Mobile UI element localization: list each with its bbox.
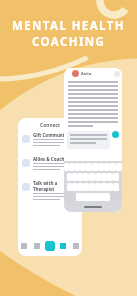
- staticText: MENTAL HEALTH: [12, 18, 125, 34]
- staticText: COACHING: [32, 34, 106, 50]
- staticText: Gift Community: [33, 132, 69, 138]
- button[interactable]: [101, 183, 107, 191]
- button[interactable]: [113, 173, 119, 181]
- button[interactable]: [83, 173, 89, 181]
- button[interactable]: Talk with a Therapist: [22, 180, 78, 204]
- button[interactable]: [80, 163, 86, 171]
- button[interactable]: [69, 236, 82, 256]
- button[interactable]: [56, 236, 69, 256]
- button[interactable]: [107, 183, 113, 191]
- staticText: Connect: [40, 122, 61, 129]
- staticText: Allies & Coaches: [33, 156, 70, 162]
- button[interactable]: Info: [114, 71, 120, 77]
- button[interactable]: [95, 183, 101, 191]
- button[interactable]: [89, 173, 95, 181]
- button[interactable]: [67, 173, 72, 181]
- button[interactable]: [83, 183, 89, 191]
- button[interactable]: [104, 163, 110, 171]
- button[interactable]: [30, 236, 43, 256]
- button[interactable]: [86, 163, 92, 171]
- button[interactable]: [116, 163, 122, 171]
- button[interactable]: [92, 163, 98, 171]
- button[interactable]: [74, 163, 80, 171]
- button[interactable]: [95, 173, 101, 181]
- button[interactable]: [98, 163, 104, 171]
- button[interactable]: [72, 183, 77, 191]
- button[interactable]: [101, 173, 107, 181]
- button[interactable]: [113, 183, 119, 191]
- button[interactable]: Gift Community: [22, 132, 78, 156]
- button[interactable]: [18, 236, 30, 256]
- button[interactable]: [64, 163, 69, 171]
- button[interactable]: [77, 173, 83, 181]
- button[interactable]: [72, 173, 77, 181]
- button[interactable]: [69, 163, 74, 171]
- staticText: Anita: [81, 71, 92, 76]
- button[interactable]: [107, 173, 113, 181]
- button[interactable]: [77, 183, 83, 191]
- button[interactable]: [110, 163, 116, 171]
- button[interactable]: [43, 236, 56, 256]
- button[interactable]: Allies & Coaches: [22, 156, 78, 180]
- staticText: Talk with a Therapist: [33, 180, 78, 192]
- button[interactable]: [89, 183, 95, 191]
- button[interactable]: [67, 183, 72, 191]
